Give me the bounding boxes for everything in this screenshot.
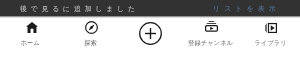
button[interactable]: 探索 <box>60 17 120 54</box>
button[interactable]: 登録チャンネル <box>180 17 240 54</box>
staticText: リストを表示 <box>213 4 280 13</box>
staticText: ライブラリ <box>254 39 287 47</box>
staticText: 探索 <box>84 39 97 47</box>
button[interactable]: リストを表示 <box>213 4 280 13</box>
button[interactable]: ホーム <box>0 17 60 54</box>
staticText: ホーム <box>20 39 40 47</box>
staticText: 後で見るに追加しました <box>20 4 139 13</box>
button[interactable]: Create video <box>120 17 180 54</box>
staticText: 登録チャンネル <box>188 39 233 47</box>
button[interactable]: ライブラリ <box>240 17 300 54</box>
